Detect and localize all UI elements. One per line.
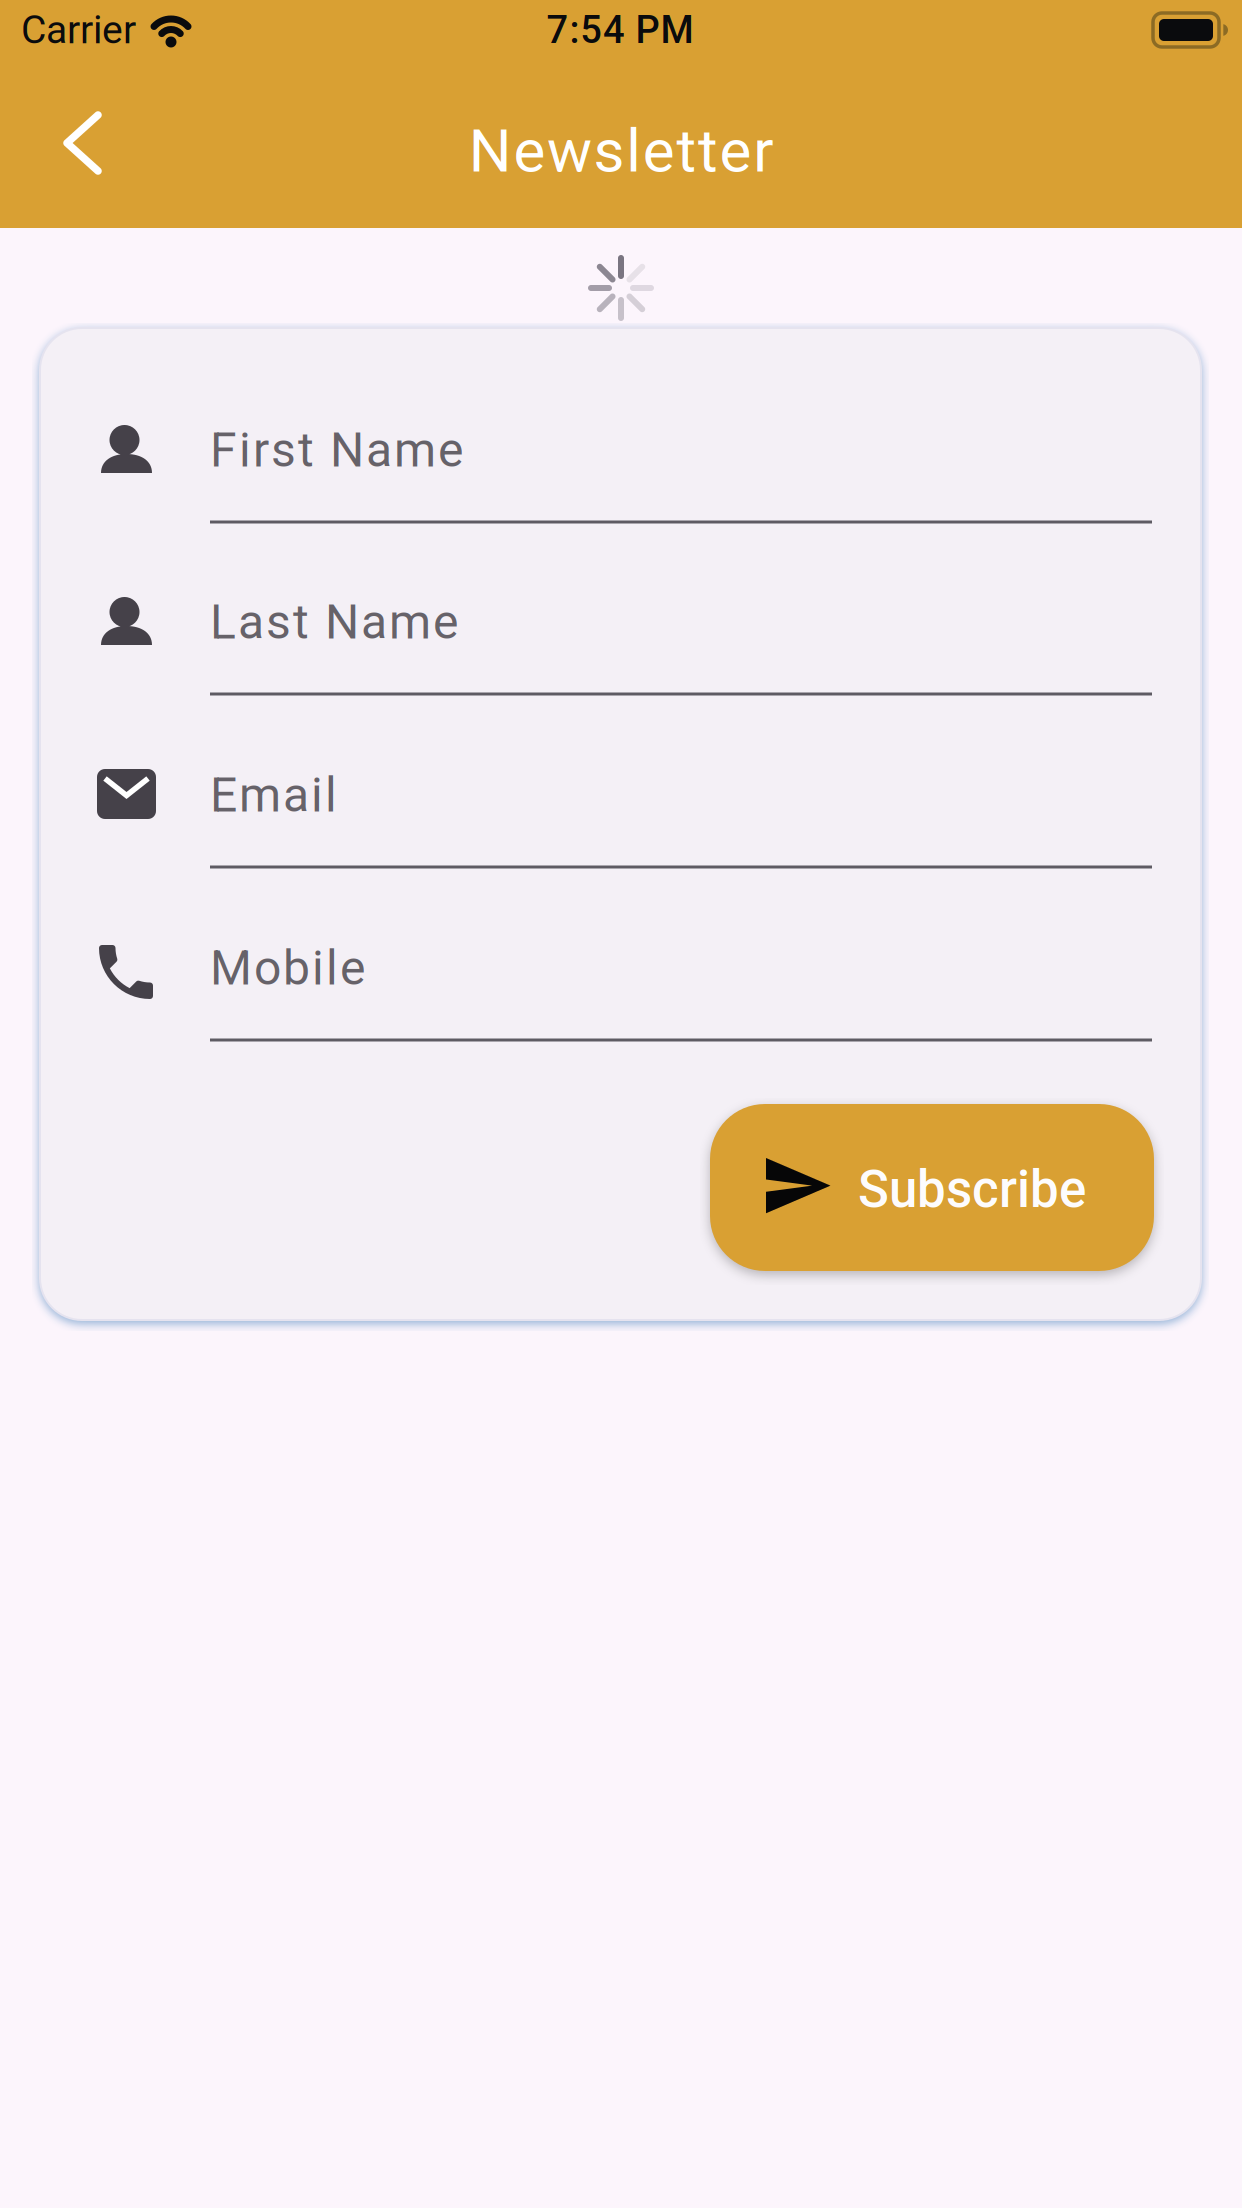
button[interactable]: Back	[33, 84, 143, 204]
button[interactable]: Email	[60, 708, 1182, 880]
staticText: Subscribe	[858, 1160, 1086, 1219]
staticText: Last Name	[210, 594, 458, 650]
staticText: Newsletter	[469, 116, 773, 186]
button[interactable]: Subscribe	[710, 1104, 1154, 1271]
staticText: Email	[210, 767, 337, 823]
button[interactable]: Last Name	[60, 535, 1182, 707]
button[interactable]: First Name	[60, 363, 1182, 535]
staticText: First Name	[210, 422, 463, 478]
staticText: Carrier	[21, 7, 136, 53]
staticText: Mobile	[210, 940, 365, 996]
staticText: 7:54 PM	[547, 8, 693, 52]
button[interactable]: Mobile	[60, 881, 1182, 1053]
